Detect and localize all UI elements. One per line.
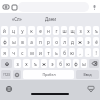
button[interactable]: э: [85, 37, 91, 46]
staticText: щ: [70, 28, 75, 34]
button[interactable]: Attach file: [10, 3, 18, 11]
staticText: ю: [66, 61, 70, 67]
staticText: э: [87, 39, 90, 45]
staticText: х: [87, 28, 90, 34]
button[interactable]: ы: [81, 59, 87, 68]
button[interactable]: ж: [41, 59, 47, 68]
button[interactable]: х: [23, 59, 30, 68]
button[interactable]: н: [45, 26, 51, 35]
staticText: ж: [42, 61, 46, 67]
button[interactable]: д: [69, 37, 75, 46]
button[interactable]: ж: [77, 37, 83, 46]
staticText: ф: [3, 39, 7, 45]
button[interactable]: м: [28, 48, 35, 57]
button[interactable]: р: [45, 37, 51, 46]
button[interactable]: Ввод: [76, 70, 99, 79]
staticText: а: [30, 39, 33, 45]
staticText: ё: [95, 39, 98, 45]
staticText: Пробел: [42, 72, 56, 77]
staticText: я: [3, 50, 6, 56]
staticText: н: [47, 28, 50, 34]
staticText: з: [79, 28, 82, 34]
staticText: г: [55, 28, 58, 34]
button[interactable]: я: [1, 48, 8, 57]
button[interactable]: й: [1, 26, 8, 35]
staticText: ы: [82, 61, 86, 67]
staticText: м: [30, 50, 34, 56]
staticText: ь: [55, 50, 58, 56]
staticText: е: [39, 28, 42, 34]
staticText: ш: [62, 28, 67, 34]
button[interactable]: ш: [61, 26, 67, 35]
button[interactable]: а: [28, 37, 35, 46]
button[interactable]: !: [93, 48, 99, 57]
button[interactable]: ?123: [1, 70, 11, 79]
button[interactable]: з: [14, 59, 21, 68]
button[interactable]: т: [45, 48, 51, 57]
staticText: д: [71, 39, 74, 45]
button[interactable]: в: [19, 37, 26, 46]
button[interactable]: с: [19, 48, 26, 57]
staticText: б: [59, 61, 62, 67]
staticText: п: [39, 39, 42, 45]
staticText: ю: [70, 50, 74, 56]
staticText: Ввод: [83, 72, 92, 77]
staticText: ы: [12, 39, 16, 45]
staticText: ,: [79, 50, 81, 56]
button[interactable]: щ: [69, 26, 75, 35]
button[interactable]: е: [37, 26, 43, 35]
button[interactable]: ъ: [32, 59, 39, 68]
button[interactable]: л: [61, 37, 67, 46]
button[interactable]: Shift: [1, 59, 12, 68]
button[interactable]: ф: [73, 59, 79, 68]
staticText: р: [47, 39, 50, 45]
button[interactable]: ы: [10, 37, 17, 46]
button[interactable]: .: [85, 48, 91, 57]
staticText: ф: [74, 61, 78, 67]
button[interactable]: ц: [10, 26, 17, 35]
button[interactable]: о: [53, 37, 59, 46]
button[interactable]: Дани: [34, 13, 67, 25]
button[interactable]: Voice message: [89, 2, 99, 12]
button[interactable]: э: [49, 59, 55, 68]
button[interactable]: ю: [69, 48, 75, 57]
button[interactable]: ,: [77, 48, 83, 57]
button[interactable]: к: [28, 26, 35, 35]
button[interactable]: Hide keyboard: [86, 84, 96, 94]
staticText: ъ: [95, 28, 98, 34]
button[interactable]: б: [57, 59, 63, 68]
staticText: ъ: [34, 61, 37, 67]
button[interactable]: ч: [10, 48, 17, 57]
staticText: з: [16, 61, 19, 67]
button[interactable]: ь: [53, 48, 59, 57]
button[interactable]: п: [37, 37, 43, 46]
button[interactable]: Пробел: [23, 70, 74, 79]
button[interactable]: г: [53, 26, 59, 35]
staticText: с: [21, 50, 24, 56]
button[interactable]: «Сл»: [0, 13, 34, 25]
button[interactable]: ф: [1, 37, 8, 46]
staticText: к: [30, 28, 33, 34]
staticText: и: [39, 50, 42, 56]
button[interactable]: Change language: [4, 84, 14, 94]
staticText: ч: [12, 50, 15, 56]
button[interactable]: Emoji: [13, 70, 21, 79]
button[interactable]: ъ: [93, 26, 99, 35]
button[interactable]: Backspace: [89, 59, 99, 68]
button[interactable]: з: [77, 26, 83, 35]
staticText: о: [55, 39, 58, 45]
button[interactable]: и: [37, 48, 43, 57]
button[interactable]: Camera: [1, 2, 10, 11]
button[interactable]: х: [85, 26, 91, 35]
staticText: т: [47, 50, 50, 56]
staticText: ц: [12, 28, 15, 34]
staticText: б: [63, 50, 66, 56]
staticText: э: [51, 61, 54, 67]
button[interactable]: у: [19, 26, 26, 35]
staticText: ?123: [3, 73, 10, 77]
button[interactable]: б: [61, 48, 67, 57]
button[interactable]: ю: [65, 59, 71, 68]
button[interactable]: ё: [93, 37, 99, 46]
